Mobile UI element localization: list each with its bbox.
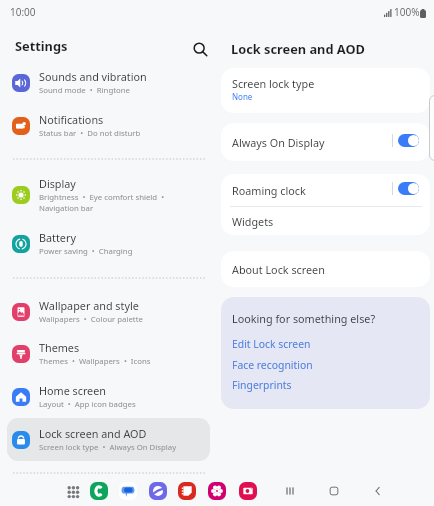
- staticText: Edit Lock screen: [232, 337, 311, 351]
- button[interactable]: Home screen: [7, 375, 210, 418]
- button[interactable]: Edit Lock screen: [232, 337, 311, 351]
- button[interactable]: Fingerprints: [232, 378, 292, 392]
- staticText: Sound mode • Ringtone: [39, 85, 130, 96]
- button[interactable]: Face recognition: [232, 358, 313, 372]
- button[interactable]: Notifications: [7, 104, 210, 147]
- staticText: Looking for something else?: [232, 311, 376, 326]
- staticText: Wallpaper and style: [39, 298, 139, 313]
- button[interactable]: About Lock screen: [221, 251, 430, 287]
- button[interactable]: Search: [186, 35, 214, 63]
- staticText: Battery: [39, 230, 76, 245]
- button[interactable]: Phone: [90, 482, 108, 500]
- button[interactable]: Themes: [7, 332, 210, 375]
- staticText: Widgets: [232, 214, 274, 229]
- button[interactable]: Roaming clock: [221, 174, 430, 206]
- staticText: Face recognition: [232, 358, 313, 372]
- staticText: About Lock screen: [232, 262, 325, 277]
- button[interactable]: Wallpaper and style: [7, 290, 210, 333]
- staticText: Screen lock type: [232, 76, 315, 91]
- button[interactable]: Messages: [119, 482, 137, 500]
- staticText: Settings: [15, 37, 68, 54]
- staticText: Navigation bar: [39, 203, 94, 214]
- staticText: Display: [39, 176, 76, 191]
- staticText: 100%: [394, 5, 420, 19]
- staticText: Roaming clock: [232, 183, 306, 198]
- staticText: Themes: [39, 340, 80, 355]
- staticText: Layout • App icon badges: [39, 399, 136, 410]
- button[interactable]: Battery: [7, 222, 210, 265]
- staticText: 10:00: [10, 5, 36, 19]
- button[interactable]: Toggle Always On Display: [398, 134, 419, 147]
- staticText: Status bar • Do not disturb: [39, 128, 141, 139]
- button[interactable]: Apps: [63, 482, 82, 501]
- staticText: Fingerprints: [232, 378, 292, 392]
- staticText: Lock screen and AOD: [231, 40, 365, 57]
- staticText: Notifications: [39, 112, 104, 127]
- button[interactable]: Display: [7, 168, 210, 222]
- button[interactable]: Lock screen and AOD: [7, 418, 210, 461]
- button[interactable]: Recents: [279, 480, 301, 502]
- staticText: Themes • Wallpapers • Icons: [39, 356, 151, 367]
- button[interactable]: Notes: [178, 482, 196, 500]
- button[interactable]: Gallery: [208, 482, 226, 500]
- button[interactable]: Always On Display: [221, 123, 430, 161]
- staticText: Power saving • Charging: [39, 246, 133, 257]
- button[interactable]: Home: [323, 480, 345, 502]
- button[interactable]: Camera: [239, 482, 257, 500]
- staticText: Always On Display: [232, 135, 325, 150]
- button[interactable]: Widgets: [221, 207, 430, 235]
- staticText: Brightness • Eye comfort shield •: [39, 192, 165, 203]
- staticText: Wallpapers • Colour palette: [39, 314, 143, 325]
- staticText: None: [232, 91, 253, 102]
- button[interactable]: Internet: [149, 482, 167, 500]
- button[interactable]: Sounds and vibration: [7, 61, 210, 104]
- staticText: Screen lock type • Always On Display: [39, 442, 177, 453]
- staticText: Lock screen and AOD: [39, 426, 147, 441]
- staticText: Sounds and vibration: [39, 69, 147, 84]
- staticText: Home screen: [39, 383, 106, 398]
- button[interactable]: Back: [367, 480, 389, 502]
- button[interactable]: Toggle Roaming clock: [398, 182, 419, 195]
